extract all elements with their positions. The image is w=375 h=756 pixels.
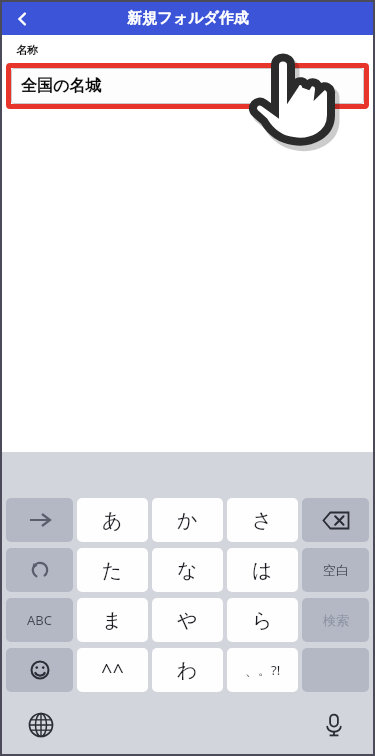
button[interactable]: か: [152, 498, 223, 542]
staticText: 空白: [323, 562, 349, 578]
staticText: 検索: [323, 612, 349, 628]
button[interactable]: 全国の名城: [11, 68, 364, 104]
button[interactable]: ^^: [77, 648, 148, 692]
staticText: 新規フォルダ作成: [127, 9, 249, 28]
button[interactable]: 空白: [302, 548, 369, 592]
staticText: た: [102, 558, 123, 583]
button[interactable]: わ: [152, 648, 223, 692]
button[interactable]: 、。?!: [227, 648, 298, 692]
staticText: 名称: [16, 43, 38, 57]
staticText: ま: [102, 608, 123, 633]
staticText: な: [177, 558, 198, 583]
button[interactable]: は: [227, 548, 298, 592]
staticText: は: [252, 558, 273, 583]
staticText: や: [177, 608, 198, 633]
button[interactable]: な: [152, 548, 223, 592]
staticText: か: [177, 508, 198, 533]
staticText: ら: [252, 608, 273, 633]
staticText: さ: [252, 508, 273, 533]
button[interactable]: 取り消し: [6, 548, 73, 592]
staticText: わ: [177, 658, 198, 683]
button[interactable]: や: [152, 598, 223, 642]
staticText: 、。?!: [245, 661, 281, 679]
button[interactable]: ABC: [6, 598, 73, 642]
button[interactable]: 音声入力: [317, 708, 351, 742]
button[interactable]: 戻る: [2, 2, 42, 35]
staticText: ABC: [27, 611, 52, 629]
button[interactable]: 絵文字: [6, 648, 73, 692]
button[interactable]: あ: [77, 498, 148, 542]
staticText: 全国の名城: [21, 76, 102, 96]
button[interactable]: た: [77, 548, 148, 592]
button[interactable]: さ: [227, 498, 298, 542]
button[interactable]: 言語切替: [24, 708, 58, 742]
staticText: ^^: [101, 657, 124, 684]
button[interactable]: 検索: [302, 598, 369, 642]
button[interactable]: ら: [227, 598, 298, 642]
button[interactable]: ま: [77, 598, 148, 642]
button[interactable]: 削除: [302, 498, 369, 542]
staticText: あ: [102, 508, 123, 533]
button[interactable]: 次候補: [6, 498, 73, 542]
